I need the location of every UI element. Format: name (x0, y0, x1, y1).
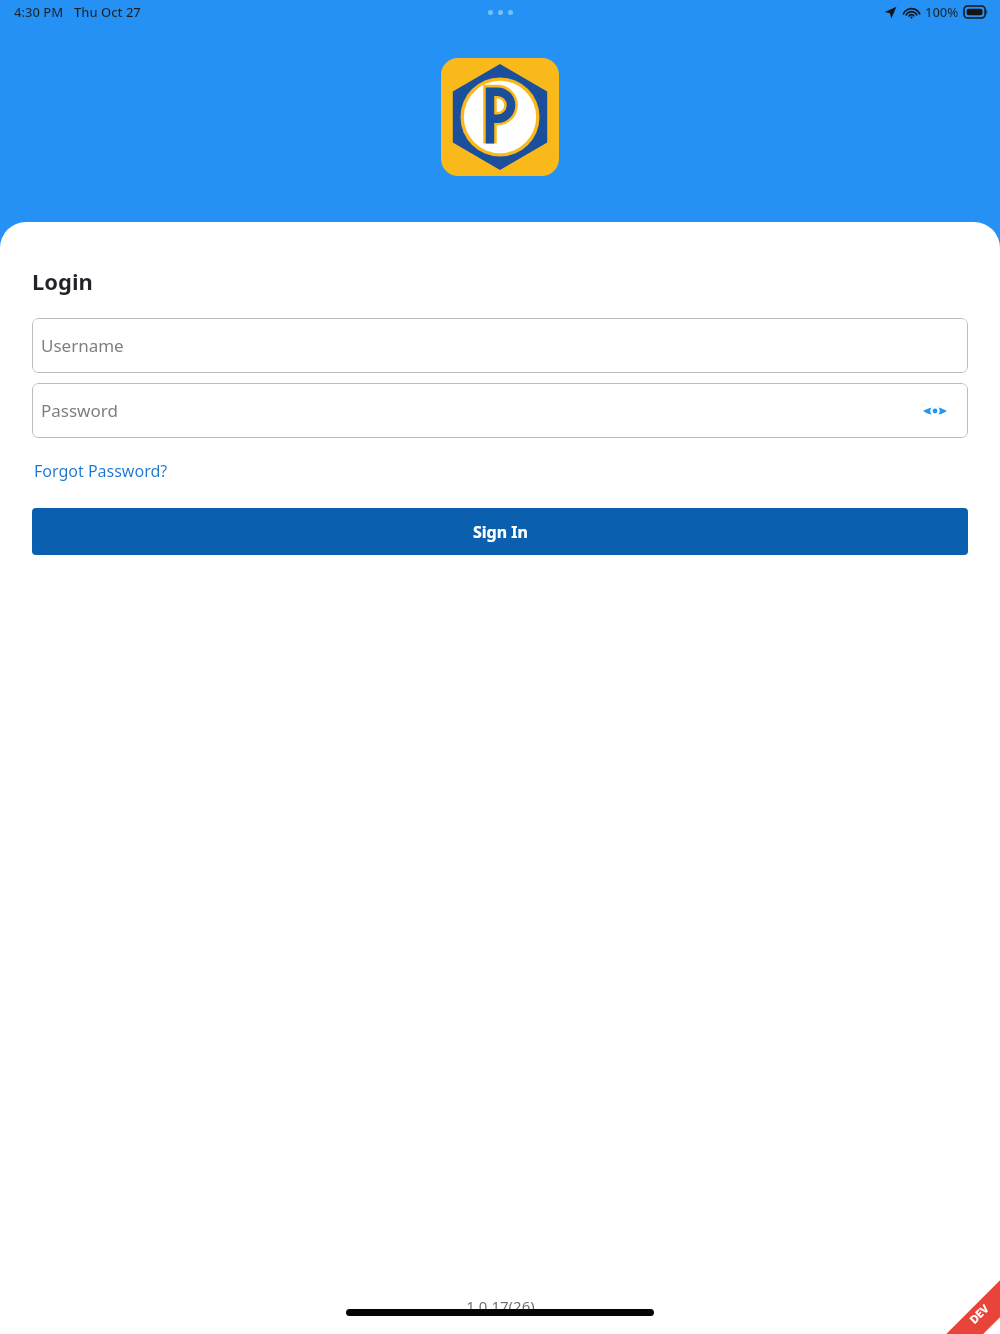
staticText: Password (41, 399, 118, 422)
button[interactable]: Username (32, 318, 968, 373)
staticText: 4:30 PM (14, 3, 64, 21)
staticText: DEV (966, 1300, 992, 1327)
staticText: Thu Oct 27 (74, 3, 141, 21)
staticText: Sign In (473, 521, 528, 543)
button[interactable]: Sign In (32, 508, 968, 555)
staticText: Forgot Password? (34, 460, 168, 482)
button[interactable]: Password (32, 383, 968, 438)
staticText: Login (32, 266, 93, 296)
button[interactable]: Forgot Password? (32, 456, 170, 486)
staticText: 100% (925, 3, 959, 21)
staticText: Username (41, 334, 124, 357)
staticText: 1.0.17(26) (466, 1296, 535, 1316)
button[interactable]: Show password (918, 394, 952, 428)
